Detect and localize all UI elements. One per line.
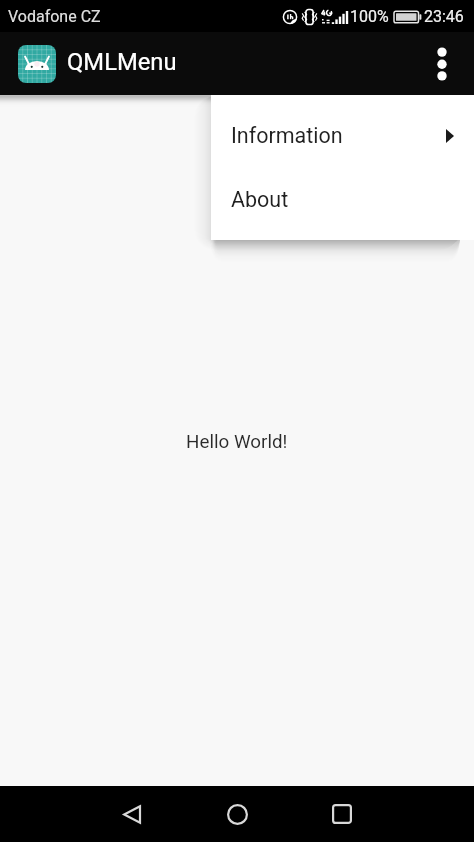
staticText: Information (231, 123, 343, 148)
button[interactable]: About (211, 167, 474, 231)
button[interactable]: Recents (316, 788, 368, 840)
staticText: Hello World! (186, 431, 288, 453)
staticText: About (231, 187, 289, 212)
staticText: 23:46 (424, 7, 464, 26)
button[interactable]: Home (211, 788, 263, 840)
button[interactable]: More options (418, 40, 466, 88)
staticText: Vodafone CZ (8, 7, 101, 26)
button[interactable]: Back (106, 788, 158, 840)
button[interactable]: Information (211, 103, 474, 167)
staticText: QMLMenu (67, 48, 177, 76)
staticText: 100% (350, 7, 389, 26)
